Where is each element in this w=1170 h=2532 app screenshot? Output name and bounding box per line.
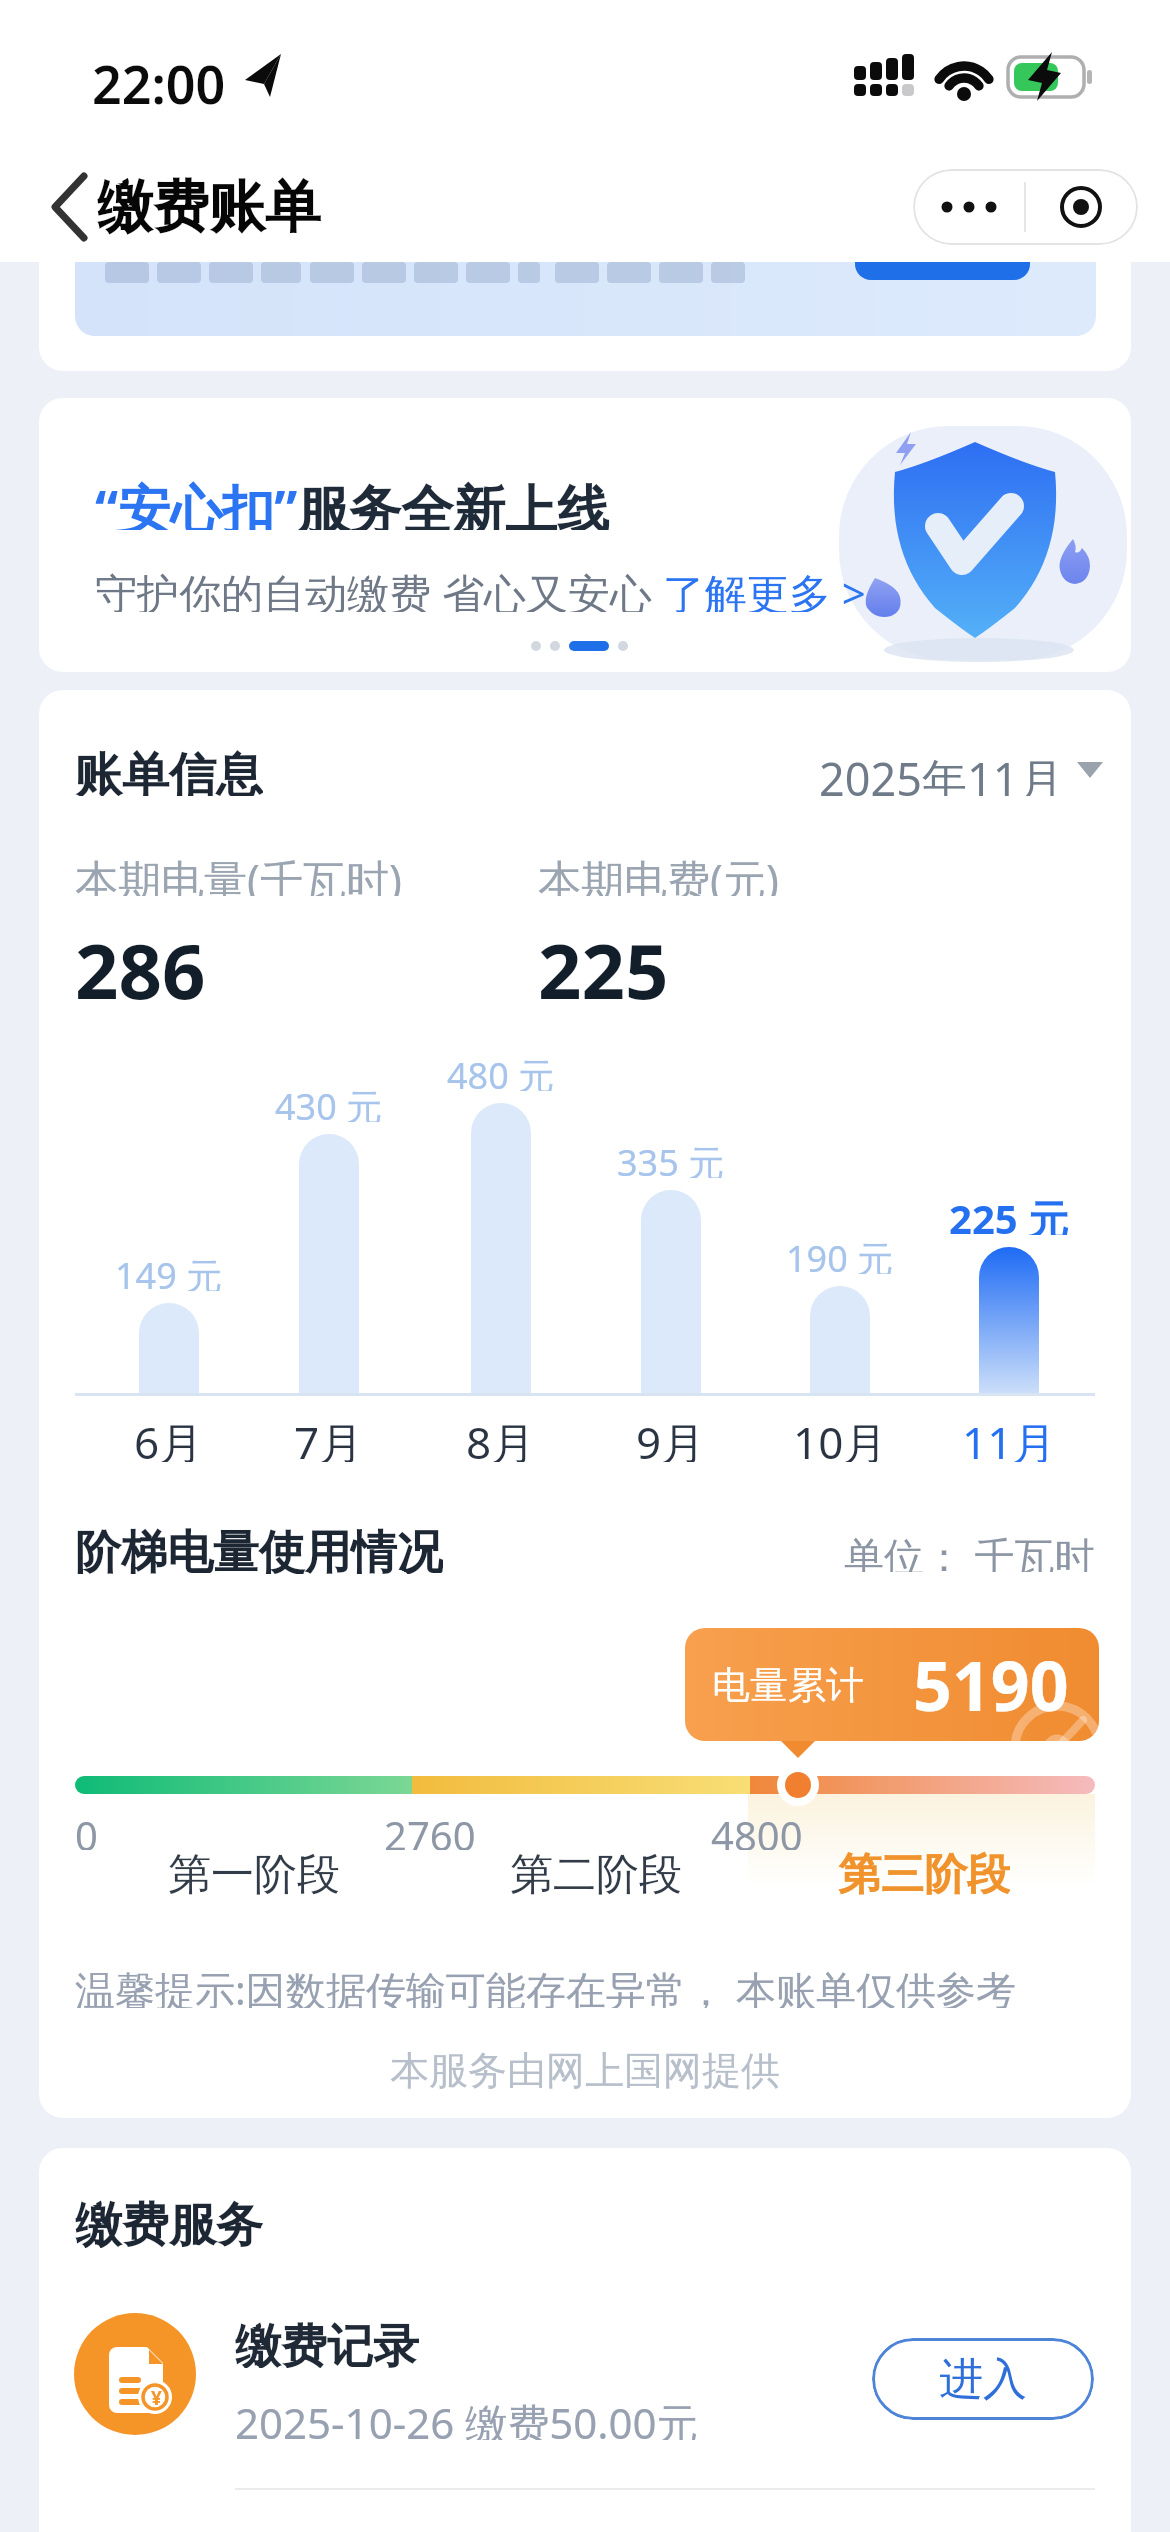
staticText: “安心扣”服务全新上线: [95, 472, 610, 530]
staticText: 第一阶段: [168, 1848, 340, 1896]
button[interactable]: 进入: [872, 2338, 1094, 2420]
staticText: 2025-10-26 缴费50.00元: [235, 2394, 699, 2440]
staticText: 进入: [939, 2352, 1027, 2407]
staticText: 0: [75, 1808, 98, 1850]
staticText: 225: [538, 918, 669, 1004]
staticText: 2025年11月: [819, 748, 1064, 796]
staticText: 缴费服务: [75, 2196, 263, 2248]
staticText: 第二阶段: [510, 1848, 682, 1896]
staticText: 阶梯电量使用情况: [75, 1524, 443, 1574]
staticText: 本服务由网上国网提供: [390, 2046, 780, 2090]
button[interactable]: [40, 165, 100, 249]
staticText: 480 元: [447, 1051, 555, 1091]
staticText: 430 元: [275, 1082, 383, 1122]
staticText: 149 元: [115, 1251, 223, 1291]
staticText: 4800: [711, 1808, 803, 1850]
staticText: 守护你的自动缴费 省心又安心 了解更多 >: [95, 564, 866, 612]
staticText: 10月: [793, 1412, 888, 1462]
staticText: 2760: [384, 1808, 476, 1850]
staticText: 190 元: [786, 1234, 894, 1274]
button[interactable]: [39, 2298, 1131, 2498]
staticText: 7月: [294, 1412, 364, 1462]
staticText: 6月: [134, 1412, 204, 1462]
staticText: 第三阶段: [838, 1848, 1010, 1896]
staticText: 温馨提示:因数据传输可能存在异常， 本账单仅供参考: [75, 1962, 1017, 2008]
staticText: 本期电量(千瓦时): [75, 850, 402, 896]
staticText: 22:00: [92, 48, 226, 108]
staticText: 5190: [913, 1638, 1069, 1731]
staticText: 11月: [962, 1412, 1057, 1462]
staticText: 335 元: [617, 1138, 725, 1178]
staticText: 缴费账单: [97, 172, 321, 236]
staticText: 本期电费(元): [538, 850, 779, 896]
staticText: 286: [75, 918, 206, 1004]
staticText: ¥: [151, 2385, 162, 2411]
button[interactable]: “安心扣”服务全新上线: [39, 398, 1131, 672]
staticText: 缴费记录: [235, 2318, 419, 2368]
staticText: 单位： 千瓦时: [844, 1528, 1095, 1572]
staticText: 账单信息: [75, 746, 263, 796]
staticText: 9月: [636, 1412, 706, 1462]
staticText: 8月: [466, 1412, 536, 1462]
staticText: 电量累计: [712, 1661, 864, 1709]
staticText: 225 元: [949, 1191, 1069, 1235]
button[interactable]: [913, 169, 1138, 245]
button[interactable]: [664, 742, 1104, 798]
